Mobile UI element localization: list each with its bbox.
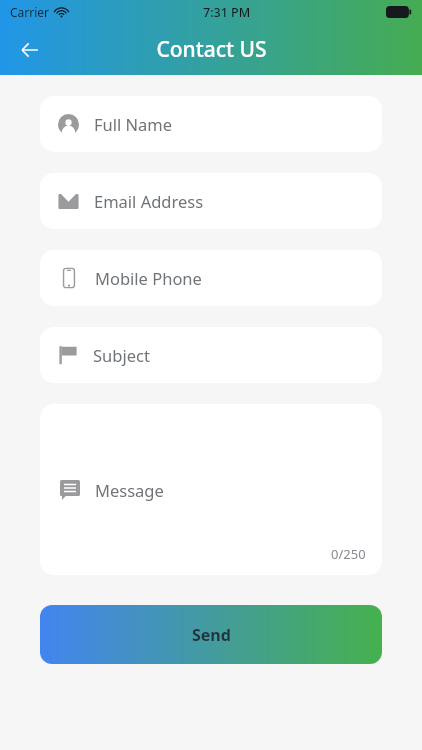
staticText: Send xyxy=(192,624,231,646)
staticText: 7:31 PM xyxy=(203,4,251,21)
button[interactable]: Email Address xyxy=(40,173,382,229)
staticText: Carrier xyxy=(10,4,50,20)
button[interactable]: Subject xyxy=(40,327,382,383)
button[interactable]: Full Name xyxy=(40,96,382,152)
staticText: Subject xyxy=(93,344,150,366)
button[interactable]: Send xyxy=(40,605,382,664)
button[interactable]: Message xyxy=(40,404,382,575)
staticText: Mobile Phone xyxy=(95,267,202,289)
staticText: Full Name xyxy=(94,113,173,135)
staticText: Email Address xyxy=(94,190,204,212)
staticText: Message xyxy=(95,479,164,501)
button[interactable]: Mobile Phone xyxy=(40,250,382,306)
button[interactable]: Back xyxy=(10,30,50,70)
staticText: 0/250 xyxy=(331,545,366,563)
staticText: Contact US xyxy=(156,35,267,64)
